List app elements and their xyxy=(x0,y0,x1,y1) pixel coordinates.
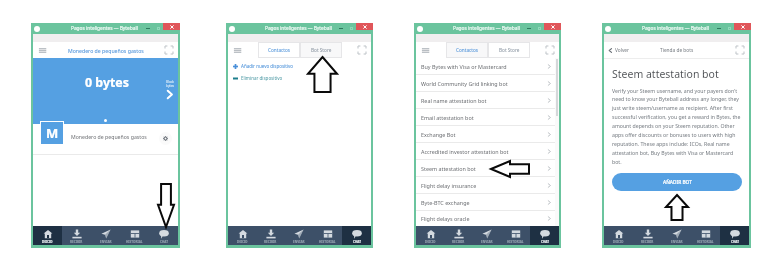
staticText: 0 bytes xyxy=(85,74,129,91)
button[interactable]: Expand xyxy=(736,46,744,54)
staticText: Monedero de pequeños gastos xyxy=(68,47,144,54)
button[interactable]: Close xyxy=(544,23,561,30)
button[interactable]: Email attestation bot xyxy=(416,109,559,126)
button[interactable]: Exchange Bot xyxy=(416,126,559,143)
staticText: Añadir nuevo dispositivo xyxy=(241,63,294,69)
staticText: Steem attestation bot xyxy=(612,67,719,81)
staticText: ENVIAR xyxy=(481,240,493,244)
button[interactable]: Añadir nuevo dispositivo xyxy=(233,63,294,69)
button[interactable]: Minimize xyxy=(523,23,534,34)
button[interactable]: RECIBIR xyxy=(256,226,284,245)
staticText: World Community Grid linking bot xyxy=(421,80,547,87)
button[interactable]: ENVIAR xyxy=(662,226,691,245)
button[interactable]: Bot Store xyxy=(300,42,342,58)
staticText: INICIO xyxy=(425,240,436,244)
button[interactable]: Maximize xyxy=(153,23,163,34)
staticText: CHAT xyxy=(160,240,169,244)
button[interactable]: INICIO xyxy=(228,226,256,245)
button[interactable]: HISTORIAL xyxy=(501,226,530,245)
button[interactable]: RECIBIR xyxy=(444,226,472,245)
button[interactable]: Menu xyxy=(233,46,242,55)
button[interactable]: Menu xyxy=(421,46,430,55)
button[interactable]: CHAT xyxy=(149,226,178,245)
button[interactable]: Volver xyxy=(608,47,630,54)
button[interactable]: HISTORIAL xyxy=(120,226,149,245)
button[interactable]: Minimize xyxy=(142,23,153,34)
button[interactable]: Real name attestation bot xyxy=(416,92,559,109)
staticText: Contactos xyxy=(268,47,291,53)
staticText: HISTORIAL xyxy=(697,240,714,244)
button[interactable]: RECIBIR xyxy=(62,226,91,245)
button[interactable]: HISTORIAL xyxy=(691,226,720,245)
staticText: CHAT xyxy=(541,240,550,244)
staticText: HISTORIAL xyxy=(507,240,524,244)
button[interactable]: Menu xyxy=(38,46,47,55)
button[interactable]: HISTORIAL xyxy=(313,226,342,245)
button[interactable]: ENVIAR xyxy=(472,226,501,245)
staticText: CHAT xyxy=(731,240,740,244)
staticText: RECIBIR xyxy=(264,240,277,244)
staticText: Email attestation bot xyxy=(421,114,547,121)
staticText: Pagos inteligentes — Byteball xyxy=(71,25,138,32)
button[interactable]: Accredited investor attestation bot xyxy=(416,143,559,160)
button[interactable]: Buy Bytes with Visa or Mastercard xyxy=(416,58,559,75)
staticText: INICIO xyxy=(42,240,53,244)
staticText: Pagos inteligentes — Byteball xyxy=(453,25,520,32)
button[interactable]: Close xyxy=(356,23,373,30)
button[interactable]: Maximize xyxy=(534,23,544,34)
button[interactable]: Flight delays oracle xyxy=(416,211,559,226)
staticText: Buy Bytes with Visa or Mastercard xyxy=(421,63,547,70)
button[interactable]: Expand xyxy=(546,46,554,54)
staticText: Volver xyxy=(615,47,630,54)
button[interactable]: Expand xyxy=(358,46,366,54)
staticText: INICIO xyxy=(613,240,624,244)
button[interactable]: CHAT xyxy=(720,226,749,245)
staticText: RECIBIR xyxy=(641,240,654,244)
button[interactable]: ENVIAR xyxy=(284,226,313,245)
button[interactable]: World Community Grid linking bot xyxy=(416,75,559,92)
button[interactable]: INICIO xyxy=(33,226,62,245)
button[interactable]: Minimize xyxy=(713,23,724,34)
button[interactable]: Contactos xyxy=(446,42,488,58)
button[interactable]: Contactos xyxy=(258,42,300,58)
button[interactable]: Minimize xyxy=(335,23,346,34)
button[interactable]: Bot Store xyxy=(488,42,530,58)
staticText: Bot Store xyxy=(311,47,332,53)
button[interactable]: INICIO xyxy=(604,226,633,245)
button[interactable]: AÑADIR BOT xyxy=(612,173,742,191)
staticText: Pagos inteligentes — Byteball xyxy=(642,25,709,32)
button[interactable]: Flight delay insurance xyxy=(416,177,559,194)
staticText: Pagos inteligentes — Byteball xyxy=(265,25,332,32)
button[interactable]: Steem attestation bot xyxy=(416,160,559,177)
button[interactable]: Maximize xyxy=(724,23,734,34)
staticText: Verify your Steem username, and your pay… xyxy=(612,87,742,165)
staticText: AÑADIR BOT xyxy=(663,179,692,186)
button[interactable]: RECIBIR xyxy=(633,226,662,245)
staticText: Bot Store xyxy=(499,47,520,53)
button[interactable]: CHAT xyxy=(530,226,559,245)
button[interactable]: Eliminar dispositivo xyxy=(233,75,283,81)
staticText: Contactos xyxy=(456,47,479,53)
staticText: Eliminar dispositivo xyxy=(241,75,283,81)
button[interactable]: Maximize xyxy=(346,23,356,34)
staticText: ENVIAR xyxy=(671,240,683,244)
staticText: RECIBIR xyxy=(70,240,83,244)
staticText: Steem attestation bot xyxy=(421,165,547,172)
button[interactable]: Close xyxy=(163,23,180,30)
button[interactable]: Expand xyxy=(165,46,173,54)
staticText: HISTORIAL xyxy=(126,240,143,244)
staticText: Flight delay insurance xyxy=(421,182,547,189)
staticText: Monedero de pequeños gastos xyxy=(71,133,147,140)
staticText: Byte-BTC exchange xyxy=(421,199,547,206)
button[interactable]: CHAT xyxy=(342,226,371,245)
button[interactable]: ENVIAR xyxy=(91,226,120,245)
button[interactable]: Settings xyxy=(159,132,172,145)
staticText: ENVIAR xyxy=(100,240,112,244)
button[interactable]: INICIO xyxy=(416,226,444,245)
button[interactable]: Close xyxy=(734,23,751,30)
staticText: Accredited investor attestation bot xyxy=(421,148,547,155)
staticText: ENVIAR xyxy=(293,240,305,244)
staticText: INICIO xyxy=(237,240,248,244)
staticText: Tienda de bots xyxy=(660,47,694,54)
button[interactable]: Byte-BTC exchange xyxy=(416,194,559,211)
